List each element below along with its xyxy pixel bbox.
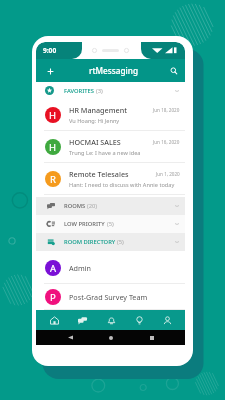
button[interactable]: New message: [43, 64, 57, 78]
staticText: Jun 18, 2020: [153, 107, 180, 113]
staticText: H: [49, 141, 57, 154]
staticText: ROOM DIRECTORY: [64, 238, 117, 246]
button[interactable]: Chats: [72, 310, 92, 330]
button[interactable]: FAVORITES: [36, 82, 185, 99]
staticText: LOW PRIORITY: [64, 220, 107, 228]
button[interactable]: Recent apps: [145, 331, 158, 344]
staticText: Jun 1, 2020: [156, 171, 180, 177]
staticText: H: [49, 109, 57, 122]
staticText: Remote Telesales: [69, 169, 129, 179]
staticText: (5): [117, 238, 124, 246]
button[interactable]: ROOM DIRECTORY: [36, 233, 185, 251]
staticText: 9:00: [43, 46, 57, 55]
button[interactable]: Notifications: [101, 310, 121, 330]
button[interactable]: Home: [104, 331, 117, 344]
staticText: (5): [107, 220, 114, 228]
button[interactable]: R: [36, 163, 185, 195]
staticText: R: [50, 173, 56, 186]
staticText: Hant: I need to discuss with Annie today: [69, 181, 175, 189]
button[interactable]: Profile: [157, 310, 177, 330]
staticText: Admin: [69, 263, 92, 273]
staticText: Trung Le: I have a new idea: [69, 149, 141, 157]
button[interactable]: H: [36, 131, 185, 163]
button[interactable]: A: [36, 251, 185, 284]
staticText: Vu Hoang: Hi Jenny: [69, 117, 120, 125]
staticText: ROOMS: [64, 202, 87, 210]
button[interactable]: LOW PRIORITY: [36, 215, 185, 233]
button[interactable]: P: [36, 284, 185, 310]
button[interactable]: Ideas: [129, 310, 149, 330]
staticText: HR Management: [69, 105, 127, 115]
staticText: Jun 16, 2020: [153, 139, 180, 145]
staticText: A: [50, 262, 57, 275]
staticText: Post-Grad Survey Team: [69, 292, 148, 302]
button[interactable]: Search: [167, 64, 181, 78]
staticText: FAVORITES: [64, 87, 96, 95]
staticText: HOCMAI SALES: [69, 137, 121, 147]
button[interactable]: Home: [44, 310, 64, 330]
staticText: P: [50, 291, 56, 304]
staticText: (20): [87, 202, 98, 210]
button[interactable]: Back: [64, 331, 77, 344]
staticText: rtMessaging: [89, 65, 138, 76]
button[interactable]: ROOMS: [36, 197, 185, 215]
staticText: (3): [96, 87, 103, 95]
button[interactable]: H: [36, 99, 185, 131]
